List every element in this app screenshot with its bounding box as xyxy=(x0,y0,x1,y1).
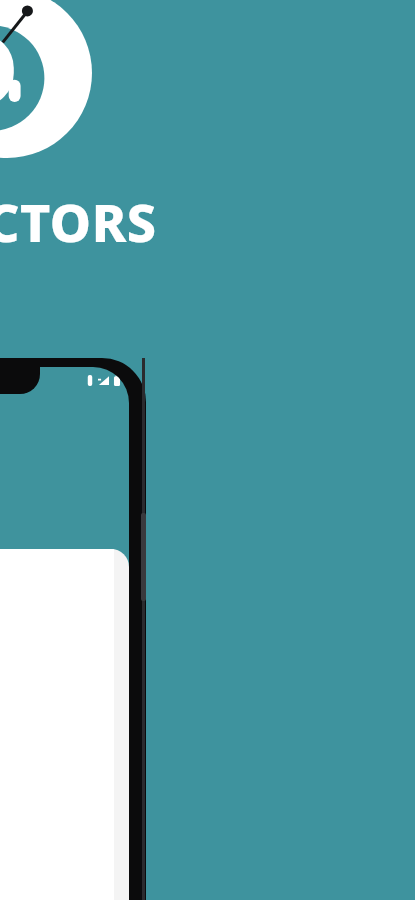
other: App logo xyxy=(0,0,92,158)
staticText: CTORS xyxy=(0,186,157,257)
other: Power button xyxy=(141,513,146,601)
